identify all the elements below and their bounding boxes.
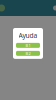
staticText: B2	[25, 51, 30, 56]
button[interactable]: B2	[16, 51, 40, 56]
staticText: B1	[25, 43, 30, 48]
staticText: Ayuda	[18, 31, 37, 40]
button[interactable]: B1	[16, 43, 40, 48]
